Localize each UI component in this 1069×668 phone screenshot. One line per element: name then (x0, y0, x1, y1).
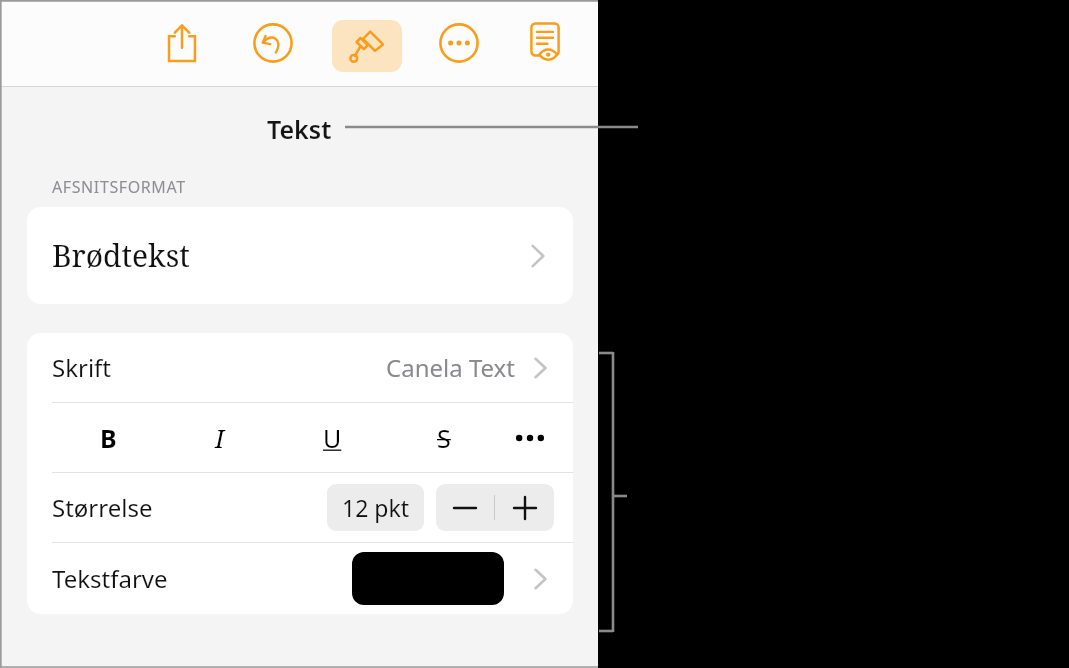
button[interactable]: Decrease size (436, 484, 494, 531)
staticText: Tekst (267, 112, 332, 146)
button[interactable]: Brødtekst (27, 207, 573, 304)
button[interactable]: 12 pkt (327, 484, 424, 531)
staticText: Størrelse (52, 491, 153, 524)
staticText: Skrift (52, 351, 112, 384)
staticText: 12 pkt (342, 492, 410, 523)
button[interactable]: Document options (517, 17, 573, 67)
staticText: S (437, 421, 451, 455)
button[interactable]: S (388, 403, 500, 472)
button[interactable]: Share (154, 18, 210, 68)
button[interactable]: Format (332, 20, 402, 72)
button[interactable]: U (276, 403, 388, 472)
button[interactable]: More text options (500, 403, 559, 472)
button[interactable]: Increase size (495, 484, 554, 531)
button[interactable]: More (431, 18, 487, 68)
staticText: U (323, 421, 342, 455)
staticText: Tekstfarve (52, 562, 168, 595)
staticText: I (215, 421, 225, 455)
button[interactable]: B (52, 403, 164, 472)
staticText: AFSNITSFORMAT (52, 176, 186, 198)
staticText: Brødtekst (52, 235, 190, 276)
staticText: Canela Text (386, 351, 515, 384)
staticText: B (100, 421, 117, 455)
button[interactable]: Undo (245, 18, 301, 68)
button[interactable]: Skrift (27, 333, 573, 402)
button[interactable]: I (164, 403, 276, 472)
button[interactable]: Tekstfarve (27, 543, 573, 614)
